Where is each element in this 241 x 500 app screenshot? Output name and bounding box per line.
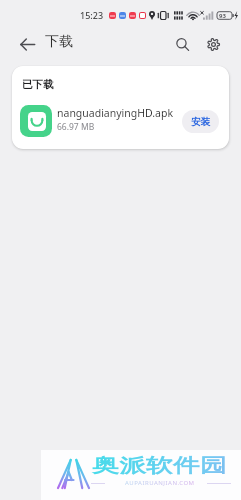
staticText: nanguadianyingHD.apk <box>57 106 174 120</box>
button[interactable]: nanguadianyingHD.apk <box>12 97 229 145</box>
staticText: 奥派软件园 <box>92 454 227 478</box>
staticText: 已下载 <box>22 78 54 91</box>
button[interactable]: 安装 <box>182 110 219 133</box>
button[interactable]: Search <box>168 30 196 58</box>
staticText: AUPAIRUANJIAN.COM <box>125 479 195 487</box>
staticText: 93 <box>219 12 226 20</box>
staticText: 15:23 <box>80 9 104 21</box>
staticText: 下载 <box>45 33 73 51</box>
staticText: 66.97 MB <box>57 121 95 133</box>
button[interactable]: Back <box>13 30 41 58</box>
button[interactable]: Settings <box>199 30 227 58</box>
staticText: 安装 <box>191 116 210 128</box>
